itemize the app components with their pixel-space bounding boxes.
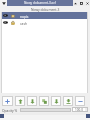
button[interactable]: Delete layer bbox=[75, 96, 85, 106]
staticText: 100.0 bbox=[75, 108, 83, 112]
button[interactable]: Close bbox=[84, 0, 90, 6]
staticText: napis bbox=[20, 14, 29, 18]
button[interactable]: Tab menu bbox=[0, 0, 7, 6]
button[interactable]: cash bbox=[1, 19, 88, 26]
button[interactable]: Minimize bbox=[73, 0, 78, 6]
staticText: Opacity % bbox=[2, 108, 18, 112]
button[interactable]: Anchor layer bbox=[51, 96, 61, 106]
button[interactable]: Stepper bbox=[85, 107, 88, 112]
button[interactable]: Lower layer bbox=[27, 96, 37, 106]
button[interactable]: Raise layer bbox=[15, 96, 25, 106]
button[interactable]: Opacity slider bbox=[20, 108, 71, 112]
staticText: Nowy dokument-3 bbox=[31, 7, 60, 11]
button[interactable]: Duplicate layer bbox=[39, 96, 49, 106]
staticText: cash bbox=[20, 21, 28, 25]
button[interactable]: napis bbox=[1, 12, 88, 19]
staticText: Nowy dokument-3.xcf bbox=[24, 1, 56, 5]
button[interactable]: Maximize bbox=[78, 0, 84, 6]
button[interactable]: Merge down bbox=[63, 96, 73, 106]
button[interactable]: New layer bbox=[2, 96, 13, 106]
